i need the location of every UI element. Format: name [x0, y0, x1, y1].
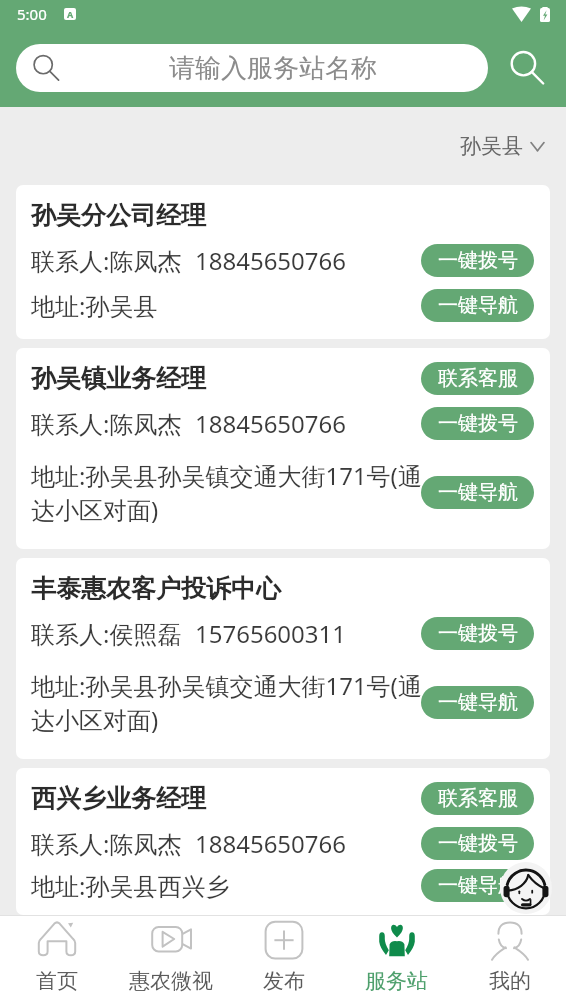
- button[interactable]: 惠农微视: [114, 916, 227, 1008]
- staticText: 一键导航: [438, 690, 518, 715]
- staticText: 18845650766: [195, 827, 347, 860]
- staticText: 一键拨号: [438, 411, 518, 436]
- button[interactable]: 西兴乡业务经理: [16, 768, 550, 915]
- staticText: 18845650766: [195, 244, 347, 277]
- button[interactable]: 一键拨号: [421, 244, 534, 277]
- button[interactable]: 一键拨号: [421, 617, 534, 650]
- staticText: 联系客服: [438, 366, 518, 391]
- button[interactable]: 服务站: [340, 916, 453, 1008]
- staticText: 5:00: [17, 4, 47, 24]
- staticText: 一键拨号: [438, 621, 518, 646]
- staticText: 18845650766: [195, 407, 347, 440]
- button[interactable]: 联系客服: [421, 782, 534, 815]
- button[interactable]: 一键拨号: [421, 827, 534, 860]
- button[interactable]: 丰泰惠农客户投诉中心: [16, 558, 550, 759]
- staticText: 请输入服务站名称: [60, 52, 486, 85]
- staticText: 联系人:陈凤杰: [31, 244, 182, 277]
- staticText: 联系人:陈凤杰: [31, 827, 182, 860]
- button[interactable]: 一键导航: [421, 686, 534, 719]
- staticText: 服务站: [365, 968, 428, 994]
- button[interactable]: 孙吴镇业务经理: [16, 348, 550, 549]
- staticText: 地址:孙吴县: [31, 289, 158, 322]
- staticText: 地址:孙吴县孙吴镇交通大街171号(通 达小区对面): [31, 669, 422, 736]
- staticText: 一键导航: [438, 480, 518, 505]
- staticText: A: [67, 8, 74, 20]
- staticText: 孙吴县: [460, 133, 523, 159]
- button[interactable]: 请输入服务站名称: [16, 44, 488, 92]
- staticText: 孙吴镇业务经理: [31, 363, 206, 394]
- staticText: 惠农微视: [129, 968, 213, 994]
- button[interactable]: 孙吴县: [454, 125, 550, 167]
- button[interactable]: 搜索: [488, 44, 566, 92]
- staticText: 联系人:陈凤杰: [31, 407, 182, 440]
- button[interactable]: 一键拨号: [421, 407, 534, 440]
- button[interactable]: 在线客服: [500, 862, 552, 914]
- button[interactable]: 一键导航: [421, 476, 534, 509]
- staticText: 地址:孙吴县西兴乡: [31, 869, 230, 902]
- button[interactable]: 孙吴分公司经理: [16, 185, 550, 339]
- staticText: 一键导航: [438, 873, 518, 898]
- staticText: 地址:孙吴县孙吴镇交通大街171号(通 达小区对面): [31, 459, 422, 526]
- button[interactable]: 首页: [0, 916, 114, 1008]
- staticText: 孙吴分公司经理: [31, 200, 206, 231]
- staticText: 西兴乡业务经理: [31, 783, 206, 814]
- staticText: 一键导航: [438, 293, 518, 318]
- button[interactable]: 联系客服: [421, 362, 534, 395]
- staticText: 联系客服: [438, 786, 518, 811]
- button[interactable]: 发布: [227, 916, 340, 1008]
- staticText: 联系人:侯照磊: [31, 617, 182, 650]
- staticText: 发布: [263, 968, 305, 994]
- button[interactable]: 一键导航: [421, 289, 534, 322]
- staticText: 丰泰惠农客户投诉中心: [31, 573, 281, 604]
- staticText: 首页: [36, 968, 78, 994]
- button[interactable]: 我的: [453, 916, 566, 1008]
- staticText: 15765600311: [195, 617, 347, 650]
- staticText: 一键拨号: [438, 831, 518, 856]
- button[interactable]: 一键导航: [421, 869, 534, 902]
- staticText: 一键拨号: [438, 248, 518, 273]
- staticText: 我的: [489, 968, 531, 994]
